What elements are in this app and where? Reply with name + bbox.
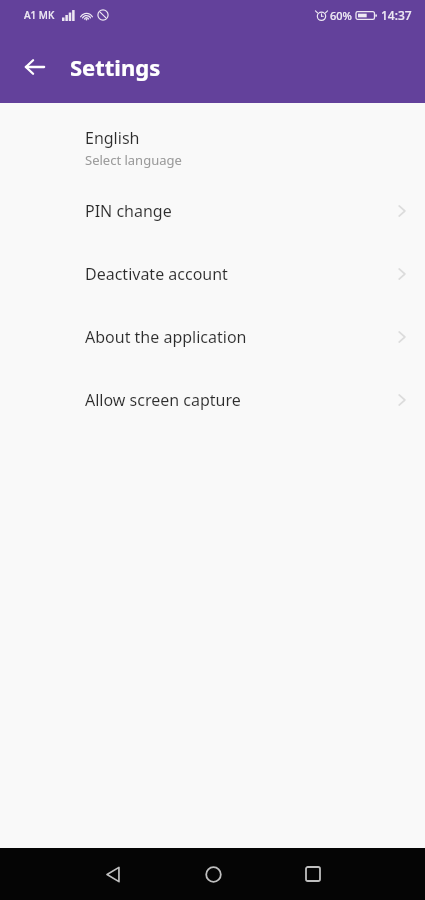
button[interactable]: Home <box>163 848 263 900</box>
staticText: Allow screen capture <box>85 389 241 411</box>
button[interactable]: About the application <box>0 305 425 368</box>
button[interactable]: PIN change <box>0 179 425 242</box>
staticText: About the application <box>85 326 247 348</box>
button[interactable]: English <box>0 116 425 179</box>
staticText: 60% <box>330 8 352 23</box>
button[interactable]: Allow screen capture <box>0 368 425 431</box>
staticText: A1 MK <box>24 8 55 22</box>
button[interactable]: Back <box>13 45 57 89</box>
staticText: English <box>85 127 140 149</box>
staticText: Settings <box>70 52 161 82</box>
staticText: PIN change <box>85 200 172 222</box>
button[interactable]: Back <box>63 848 163 900</box>
button[interactable]: Deactivate account <box>0 242 425 305</box>
staticText: 14:37 <box>381 7 412 23</box>
staticText: Select language <box>85 151 182 169</box>
button[interactable]: Recents <box>263 848 363 900</box>
staticText: Deactivate account <box>85 263 228 285</box>
